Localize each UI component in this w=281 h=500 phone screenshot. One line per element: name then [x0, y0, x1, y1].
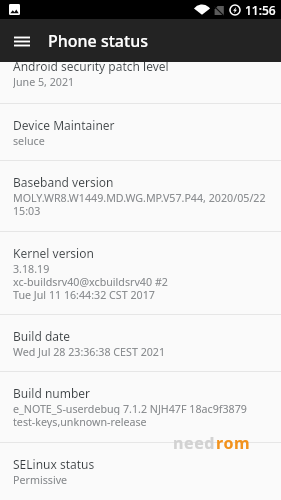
- staticText: Build date: [13, 328, 71, 344]
- staticText: seluce: [13, 134, 45, 147]
- staticText: xc-buildsrv40@xcbuildsrv40 #2: [13, 275, 168, 288]
- staticText: Permissive: [13, 473, 68, 486]
- button[interactable]: Android security patch level: [0, 62, 281, 103]
- button[interactable]: Kernel version: [0, 232, 281, 314]
- staticText: Tue Jul 11 16:44:32 CST 2017: [13, 288, 155, 301]
- button[interactable]: SELinux status: [0, 443, 281, 500]
- staticText: SELinux status: [13, 456, 95, 472]
- button[interactable]: Build number: [0, 372, 281, 442]
- staticText: e_NOTE_S-userdebug 7.1.2 NJH47F 18ac9f38…: [13, 402, 247, 415]
- staticText: need: [173, 432, 216, 454]
- button[interactable]: Build date: [0, 315, 281, 371]
- button[interactable]: Baseband version: [0, 161, 281, 231]
- staticText: Baseband version: [13, 174, 114, 190]
- staticText: Phone status: [48, 30, 148, 52]
- staticText: MOLY.WR8.W1449.MD.WG.MP.V57.P44, 2020/05…: [13, 191, 266, 204]
- button[interactable]: Device Maintainer: [0, 104, 281, 160]
- staticText: 11:56: [245, 2, 276, 18]
- staticText: 3.18.19: [13, 262, 50, 275]
- staticText: test-keys,unknown-release: [13, 415, 147, 428]
- staticText: Build number: [13, 385, 91, 401]
- button[interactable]: Open navigation menu: [7, 26, 36, 55]
- staticText: Device Maintainer: [13, 117, 115, 133]
- staticText: Kernel version: [13, 245, 94, 261]
- staticText: Wed Jul 28 23:36:38 CEST 2021: [13, 345, 166, 358]
- staticText: Android security patch level: [13, 62, 169, 74]
- staticText: June 5, 2021: [13, 75, 75, 88]
- staticText: 15:03: [13, 204, 41, 217]
- staticText: rom: [216, 432, 251, 454]
